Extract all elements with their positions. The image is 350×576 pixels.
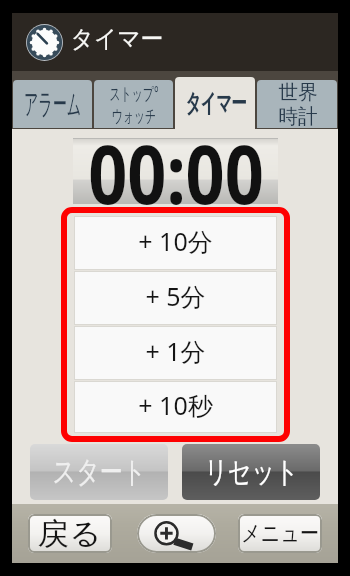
staticText: 戻る: [37, 515, 101, 553]
staticText: + 10分: [138, 224, 213, 258]
staticText: タイマー: [185, 88, 247, 119]
staticText: リセット: [204, 453, 299, 491]
button[interactable]: メニュー: [238, 514, 322, 553]
button[interactable]: + 10秒: [74, 381, 277, 433]
button[interactable]: リセット: [182, 444, 320, 500]
button[interactable]: アラーム: [13, 80, 92, 128]
staticText: 00:00: [88, 118, 264, 227]
button[interactable]: ストップ°: [94, 80, 173, 128]
button[interactable]: + 1分: [74, 326, 277, 380]
button[interactable]: Zoom in: [137, 514, 216, 553]
staticText: ウォッチ: [112, 105, 156, 127]
staticText: 世界: [278, 80, 318, 105]
button[interactable]: タイマー: [175, 77, 255, 129]
staticText: スタート: [52, 453, 147, 491]
staticText: ストップ°: [109, 81, 159, 105]
staticText: メニュー: [241, 519, 319, 548]
button[interactable]: + 10分: [74, 216, 277, 270]
staticText: 時計: [278, 104, 318, 128]
staticText: タイマー: [70, 24, 163, 54]
button[interactable]: スタート: [30, 444, 168, 500]
staticText: + 5分: [145, 279, 206, 313]
staticText: アラーム: [24, 86, 81, 123]
staticText: + 10秒: [138, 388, 213, 422]
button[interactable]: 戻る: [28, 514, 112, 553]
staticText: + 1分: [145, 334, 206, 368]
button[interactable]: 世界: [257, 80, 337, 128]
button[interactable]: + 5分: [74, 271, 277, 325]
